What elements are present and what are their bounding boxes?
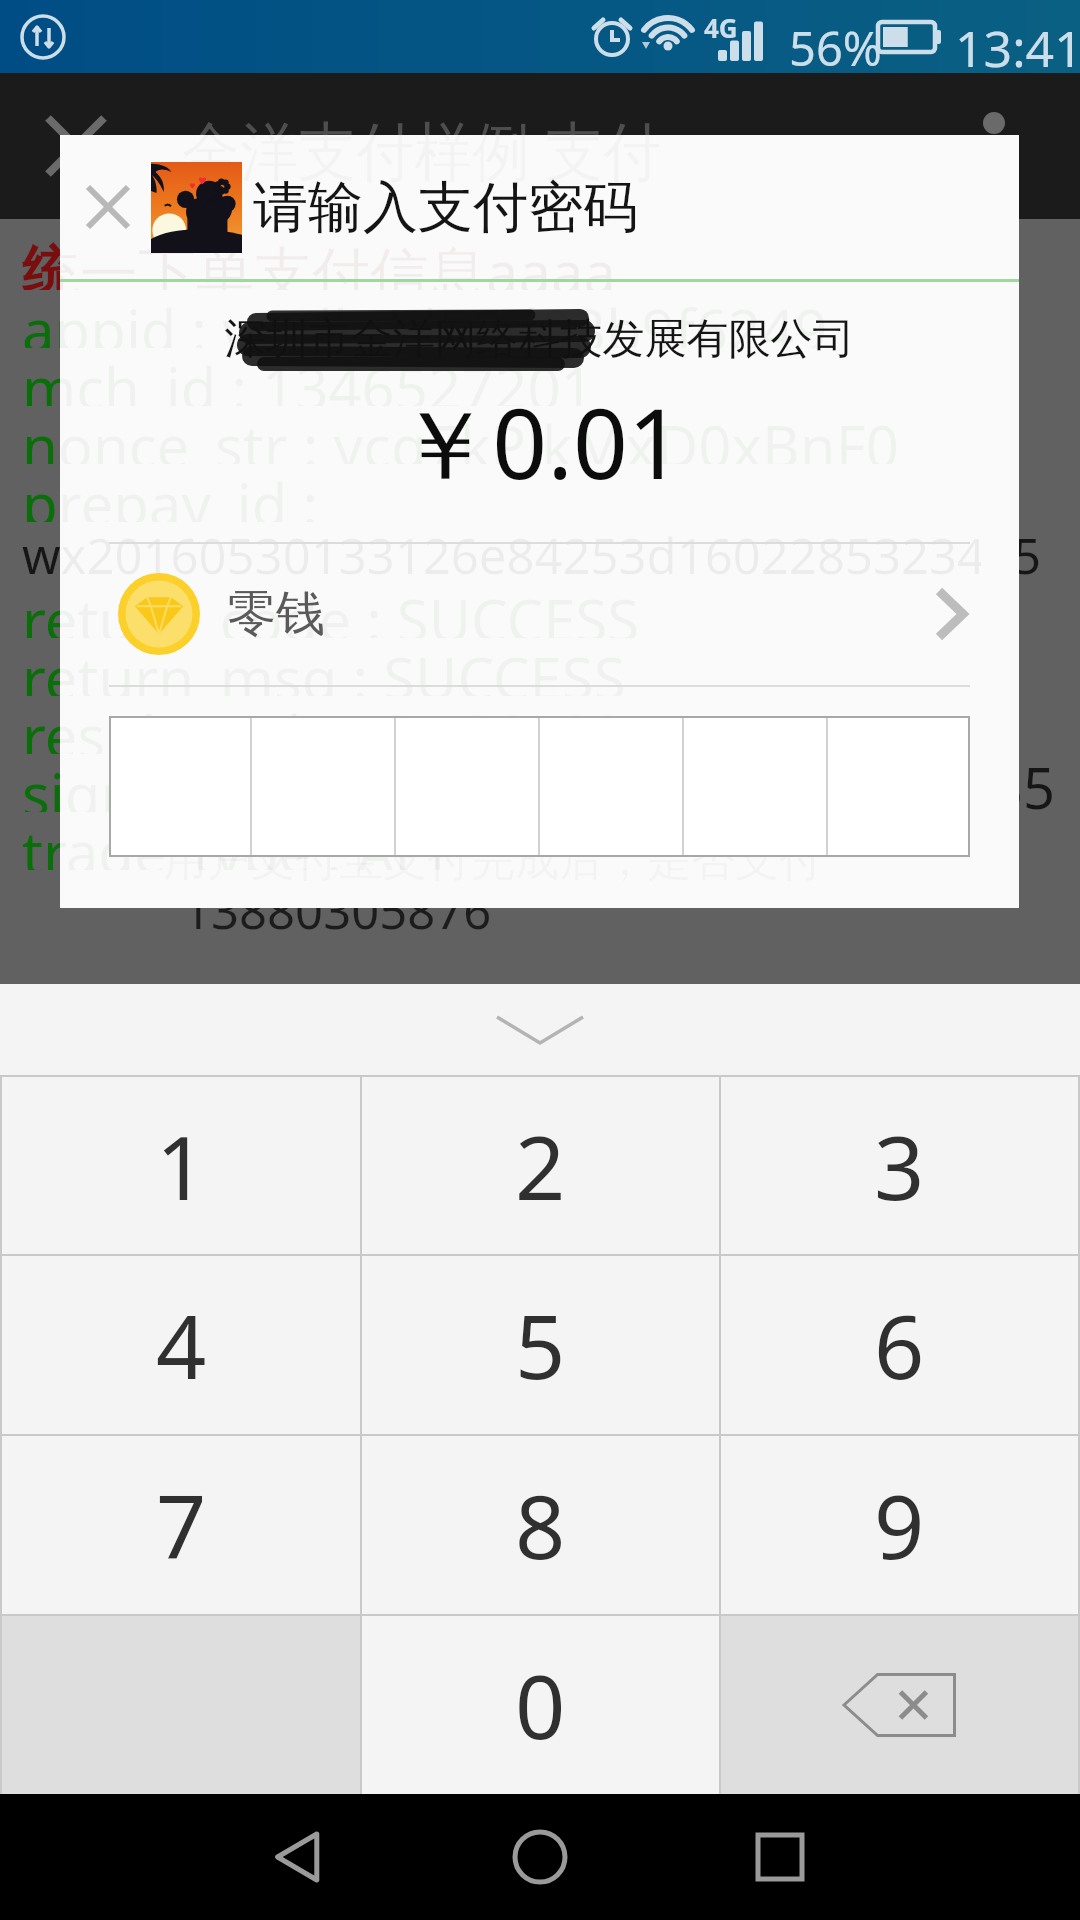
staticText: 4G [704, 10, 738, 45]
button[interactable]: Close [62, 161, 154, 253]
button[interactable]: Recent apps [730, 1807, 830, 1907]
staticText: wx20160530133126e84253d1602285323435 [60, 522, 981, 580]
staticText: prepay_id : [22, 464, 318, 522]
staticText: sign : 0A9F4C0C6DA59C035 [22, 754, 770, 812]
button[interactable]: 5 [362, 1256, 719, 1434]
staticText: mch_id : 1346527201 [22, 348, 594, 406]
staticText: 用户支付宝支付完成后，是否支付 [163, 833, 823, 888]
button[interactable]: 9 [721, 1436, 1078, 1614]
staticText: 金洋支付样例 支付 [182, 135, 662, 192]
button[interactable]: 7 [2, 1436, 360, 1614]
staticText: 零钱 [227, 583, 325, 645]
staticText: 7 [156, 1465, 207, 1585]
button[interactable]: 1 [2, 1077, 360, 1254]
staticText: nonce_str : ycg7kPJkMxD0xBnF0 [22, 406, 899, 464]
staticText: ￥0.01 [60, 376, 1019, 507]
button[interactable]: Home [490, 1807, 590, 1907]
staticText: 深圳市金洋网络科技发展有限公司 [60, 313, 1019, 366]
staticText: 56% [789, 16, 882, 80]
staticText: appid : wxdb7d50d03b9f6249 [60, 290, 828, 348]
staticText: 0 [515, 1645, 566, 1765]
staticText: result_code : SUCCESS [22, 696, 623, 754]
button[interactable]: 0 [362, 1616, 719, 1794]
staticText: 3 [874, 1106, 925, 1226]
staticText: 13:41 [955, 14, 1080, 82]
staticText: 35 [991, 749, 1056, 825]
staticText: 用户支付宝支付完成后，是否支付 [163, 833, 823, 888]
staticText: 8 [515, 1465, 566, 1585]
button[interactable]: 4 [2, 1256, 360, 1434]
staticText: appid : wxdb7d50d03b9f6249 [22, 290, 828, 348]
staticText: wx20160530133126e84253d1602285323435 [22, 522, 1042, 580]
staticText: prepay_id : [60, 464, 318, 522]
staticText: return_msg : SUCCESS [60, 638, 626, 696]
staticText: nonce_str : ycg7kPJkMxD0xBnF0 [60, 406, 899, 464]
staticText: 金洋支付样例 支付 [182, 107, 662, 186]
staticText: 统一下单支付信息aaaa [60, 232, 617, 290]
button[interactable]: 8 [362, 1436, 719, 1614]
staticText: mch_id : 1346527201 [60, 348, 594, 406]
staticText: 请输入支付密码 [253, 173, 638, 242]
staticText: 2 [515, 1106, 566, 1226]
staticText: 4 [156, 1285, 207, 1405]
button[interactable]: 零钱 [60, 544, 1019, 683]
button[interactable]: Delete [721, 1616, 1078, 1794]
button[interactable]: Hide keyboard [0, 984, 1080, 1075]
staticText: sign : 0A9F4C0C6DA59C035 [60, 754, 770, 812]
staticText: 9 [874, 1465, 925, 1585]
button[interactable]: 3 [721, 1077, 1078, 1254]
staticText: trade_type : APP [22, 812, 465, 870]
staticText: 6 [874, 1285, 925, 1405]
staticText: return_code : SUCCESS [22, 580, 640, 638]
staticText: 13880305876 [183, 877, 492, 944]
staticText: return_msg : SUCCESS [22, 638, 626, 696]
button[interactable]: 6 [721, 1256, 1078, 1434]
staticText: 1 [156, 1106, 207, 1226]
button[interactable]: Back [250, 1807, 350, 1907]
staticText: result_code : SUCCESS [60, 696, 623, 754]
button[interactable]: 2 [362, 1077, 719, 1254]
staticText: trade_type : APP [60, 812, 465, 870]
staticText: 5 [515, 1285, 566, 1405]
staticText: 统一下单支付信息aaaa [22, 232, 584, 290]
staticText: return_code : SUCCESS [60, 580, 640, 638]
other: Data transfer [20, 14, 66, 60]
